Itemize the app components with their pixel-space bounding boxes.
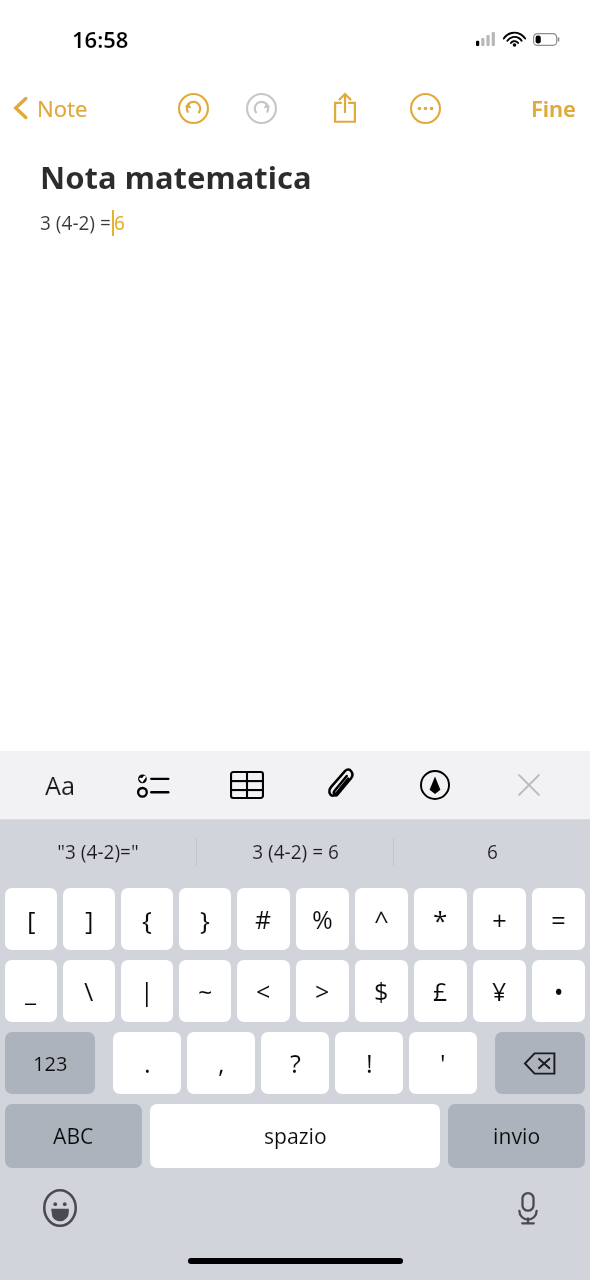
button[interactable]: Share xyxy=(319,82,371,134)
staticText: . xyxy=(144,1046,151,1080)
staticText: { xyxy=(142,902,152,937)
button[interactable]: | xyxy=(121,960,173,1022)
staticText: | xyxy=(140,974,154,1008)
staticText: ! xyxy=(366,1046,373,1080)
button[interactable]: ' xyxy=(409,1032,477,1094)
button[interactable]: 6 xyxy=(394,820,590,884)
staticText: ~ xyxy=(198,974,213,1008)
staticText: + xyxy=(492,902,507,937)
staticText: • xyxy=(554,974,564,1008)
button[interactable]: Attach xyxy=(294,751,388,819)
button[interactable]: More options xyxy=(399,82,451,134)
staticText: ABC xyxy=(53,1122,94,1151)
staticText: # xyxy=(255,902,272,936)
staticText: 16:58 xyxy=(72,24,129,54)
button[interactable]: Redo xyxy=(235,82,287,134)
button[interactable]: \ xyxy=(63,960,115,1022)
button[interactable]: ] xyxy=(63,888,115,950)
button[interactable]: "3 (4-2)=" xyxy=(0,820,196,884)
button[interactable]: $ xyxy=(355,960,408,1022)
staticText: < xyxy=(256,974,271,1008)
staticText: invio xyxy=(493,1122,541,1151)
staticText: £ xyxy=(433,974,448,1008)
staticText: ¥ xyxy=(492,974,507,1008)
staticText: ' xyxy=(440,1046,446,1080)
staticText: } xyxy=(200,902,210,937)
button[interactable]: # xyxy=(237,888,290,950)
staticText: $ xyxy=(374,974,389,1008)
button[interactable]: , xyxy=(187,1032,255,1094)
staticText: * xyxy=(433,902,448,937)
button[interactable]: . xyxy=(113,1032,181,1094)
button[interactable]: 123 xyxy=(5,1032,95,1094)
button[interactable]: ? xyxy=(261,1032,329,1094)
staticText: 3 (4-2) = 6 xyxy=(252,839,339,865)
staticText: Aa xyxy=(45,768,76,802)
staticText: [ xyxy=(27,902,36,937)
staticText: 6 xyxy=(487,839,498,865)
button[interactable]: spazio xyxy=(150,1104,440,1168)
button[interactable]: £ xyxy=(414,960,467,1022)
staticText: 6 xyxy=(114,210,125,236)
staticText: ] xyxy=(85,902,94,937)
button[interactable]: • xyxy=(532,960,585,1022)
staticText: > xyxy=(315,974,330,1008)
staticText: % xyxy=(312,902,333,936)
button[interactable]: > xyxy=(296,960,349,1022)
button[interactable]: Emoji xyxy=(38,1186,82,1230)
staticText: 3 (4-2) = xyxy=(40,210,111,236)
button[interactable]: invio xyxy=(448,1104,585,1168)
staticText: ? xyxy=(290,1046,301,1080)
button[interactable]: ¥ xyxy=(473,960,526,1022)
staticText: , xyxy=(218,1046,225,1080)
staticText: _ xyxy=(25,974,37,1008)
button[interactable]: Close keyboard xyxy=(482,751,576,819)
button[interactable]: Backspace xyxy=(495,1032,585,1094)
staticText: ^ xyxy=(374,902,389,937)
button[interactable]: + xyxy=(473,888,526,950)
button[interactable]: } xyxy=(179,888,231,950)
button[interactable]: ^ xyxy=(355,888,408,950)
staticText: Note xyxy=(37,93,88,123)
button[interactable]: Markup xyxy=(388,751,482,819)
button[interactable]: Table xyxy=(200,751,294,819)
staticText: "3 (4-2)=" xyxy=(57,839,139,865)
button[interactable]: ~ xyxy=(179,960,231,1022)
button[interactable]: Note xyxy=(10,93,88,123)
button[interactable]: { xyxy=(121,888,173,950)
staticText: Fine xyxy=(531,93,576,123)
button[interactable]: ! xyxy=(335,1032,403,1094)
button[interactable]: = xyxy=(532,888,585,950)
staticText: 123 xyxy=(33,1050,68,1077)
button[interactable]: Dictation xyxy=(506,1186,550,1230)
staticText: Nota matematica xyxy=(40,156,312,198)
button[interactable]: ABC xyxy=(5,1104,142,1168)
button[interactable]: Undo xyxy=(167,82,219,134)
staticText: = xyxy=(551,902,566,937)
staticText: \ xyxy=(84,974,94,1008)
button[interactable]: Checklist xyxy=(107,751,200,819)
staticText: spazio xyxy=(264,1122,327,1151)
button[interactable]: < xyxy=(237,960,290,1022)
button[interactable]: * xyxy=(414,888,467,950)
button[interactable]: % xyxy=(296,888,349,950)
button[interactable]: Text format xyxy=(14,751,107,819)
button[interactable]: _ xyxy=(5,960,57,1022)
button[interactable]: Fine xyxy=(531,93,576,123)
button[interactable]: [ xyxy=(5,888,57,950)
button[interactable]: 3 (4-2) = 6 xyxy=(197,820,393,884)
